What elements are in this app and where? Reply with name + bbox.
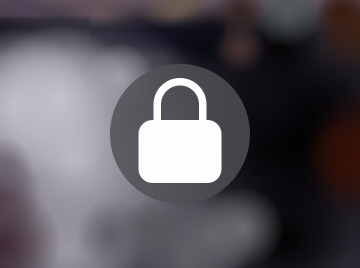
button[interactable]: Locked [110, 64, 250, 204]
